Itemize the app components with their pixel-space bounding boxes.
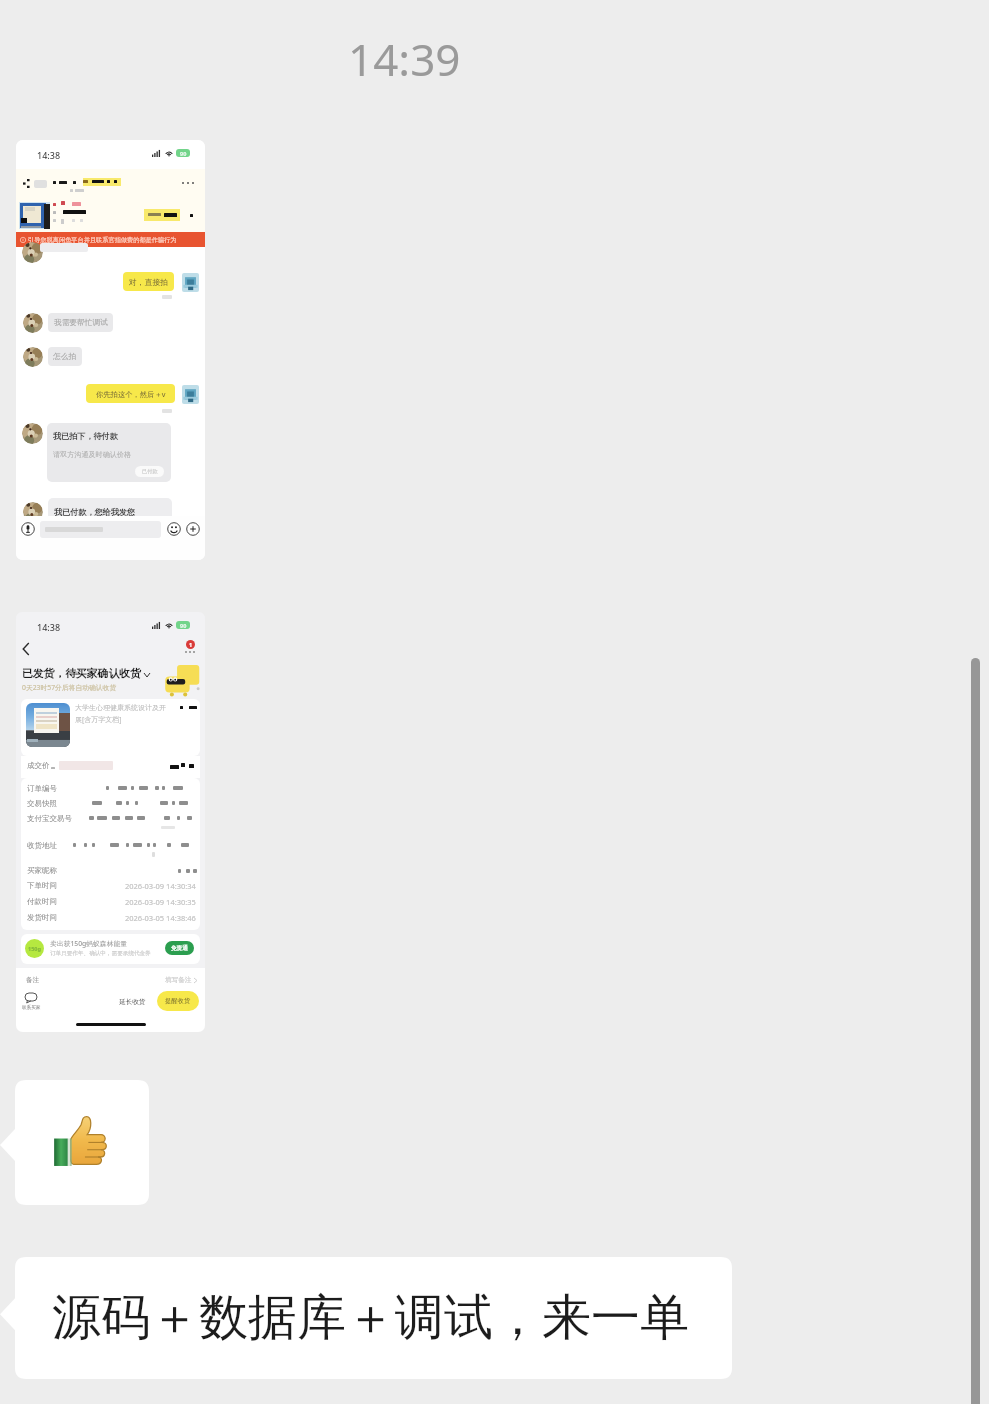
staticText: 我需要帮忙调试 <box>54 318 108 328</box>
staticText: 成交价 <box>27 761 50 770</box>
staticText: 150g <box>28 945 41 952</box>
staticText: 2026-03-09 14:30:34 <box>125 881 196 891</box>
staticText: 免责通 <box>171 945 188 952</box>
button[interactable]: More options <box>180 638 202 660</box>
button[interactable]: 源码＋数据库＋调试，来一单 <box>0 1257 732 1379</box>
staticText: 2026-03-09 14:30:35 <box>125 897 196 907</box>
button[interactable]: Chat screenshot <box>16 140 205 560</box>
staticText: 14:38 <box>37 621 61 633</box>
button[interactable]: 免责通 <box>165 941 194 955</box>
staticText: 源码＋数据库＋调试，来一单 <box>52 1287 689 1349</box>
staticText: 买家昵称 <box>27 866 57 875</box>
staticText: 2026-03-05 14:38:46 <box>125 913 196 923</box>
staticText: 发货时间 <box>27 913 57 922</box>
staticText: 交易快照 <box>27 799 57 808</box>
staticText: 收货地址 <box>27 841 57 850</box>
button[interactable]: 联系买家 <box>20 992 42 1014</box>
staticText: 我已拍下，待付款 <box>53 431 118 441</box>
button[interactable]: Thumbs up sticker <box>0 1080 149 1205</box>
button[interactable]: 备注 <box>16 968 205 990</box>
staticText: 怎么拍 <box>53 352 77 362</box>
staticText: 大学生心理健康系统设计及开 展[含万字文档] <box>75 703 166 724</box>
button[interactable]: 提醒收货 <box>157 991 199 1011</box>
staticText: 已发货，待买家确认收货 <box>22 667 141 681</box>
staticText: 请双方沟通及时确认价格 <box>53 450 132 459</box>
staticText: 联系买家 <box>22 1005 41 1011</box>
staticText: 付款时间 <box>27 897 57 906</box>
staticText: 填写备注 <box>165 976 192 984</box>
button[interactable]: Order detail screenshot <box>16 612 205 1032</box>
staticText: 支付宝交易号 <box>27 814 72 823</box>
staticText: 我已付款，您给我发您 <box>54 507 135 517</box>
staticText: 14:39 <box>348 29 461 89</box>
button[interactable]: 延长收货 <box>116 995 148 1009</box>
staticText: 下单时间 <box>27 881 57 890</box>
staticText: 已付款 <box>142 468 158 475</box>
staticText: 卖出获150g蚂蚁森林能量 <box>50 939 128 948</box>
staticText: 0天23时57分后将自动确认收货 <box>22 683 117 692</box>
staticText: 提醒收货 <box>165 997 191 1005</box>
staticText: 备注 <box>26 976 40 984</box>
staticText: 订单编号 <box>27 784 57 793</box>
staticText: 延长收货 <box>119 998 146 1006</box>
staticText: 对，直接拍 <box>129 277 168 287</box>
staticText: 引导您脱离闲鱼平台并且联系官指做费的都是作骗行为 <box>28 236 177 244</box>
staticText: 14:38 <box>37 149 61 161</box>
staticText: 1 <box>189 641 193 648</box>
staticText: 90 <box>180 150 187 157</box>
staticText: 订单只要作年、确认中，需要承绕代金券 <box>50 950 151 957</box>
staticText: 你先拍这个，然后＋v <box>96 389 166 399</box>
button[interactable]: Back <box>18 638 36 660</box>
staticText: 90 <box>180 622 187 629</box>
